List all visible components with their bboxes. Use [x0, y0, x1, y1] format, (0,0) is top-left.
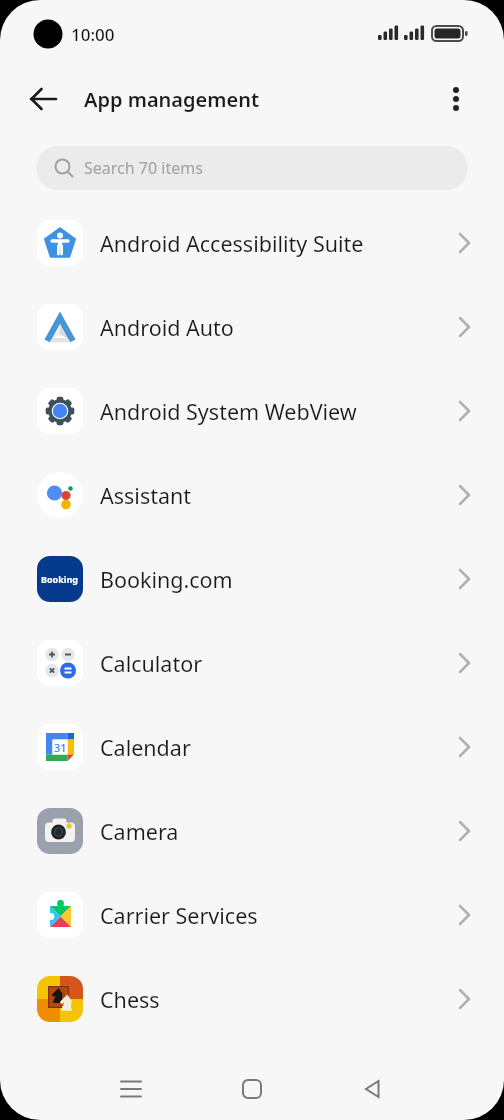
button[interactable]: Assistant [0, 453, 504, 537]
button[interactable]: Chess [0, 957, 504, 1041]
button[interactable] [22, 77, 66, 121]
button[interactable] [438, 81, 474, 117]
button[interactable]: Android System WebView [0, 369, 504, 453]
button[interactable]: Android Accessibility Suite [0, 201, 504, 285]
staticText: Assistant [100, 481, 452, 510]
button[interactable]: 31 [0, 705, 504, 789]
staticText: 31 [54, 740, 67, 755]
button[interactable]: Android Auto [0, 285, 504, 369]
button[interactable]: Booking [0, 537, 504, 621]
button[interactable]: Calculator [0, 621, 504, 705]
staticText: Calculator [100, 649, 452, 678]
staticText: Chess [100, 985, 452, 1014]
staticText: Android System WebView [100, 397, 452, 426]
staticText: 10:00 [71, 23, 115, 46]
button[interactable]: Carrier Services [0, 873, 504, 957]
button[interactable]: Search 70 items [36, 146, 468, 190]
staticText: Android Accessibility Suite [100, 229, 452, 258]
staticText: Search 70 items [84, 157, 203, 179]
button[interactable] [107, 1065, 155, 1113]
button[interactable] [228, 1065, 276, 1113]
button[interactable] [349, 1065, 397, 1113]
staticText: Camera [100, 817, 452, 846]
staticText: Calendar [100, 733, 452, 762]
staticText: App management [84, 86, 260, 113]
staticText: Booking [41, 573, 79, 585]
staticText: Carrier Services [100, 901, 452, 930]
button[interactable]: Camera [0, 789, 504, 873]
staticText: Booking.com [100, 565, 452, 594]
staticText: Android Auto [100, 313, 452, 342]
